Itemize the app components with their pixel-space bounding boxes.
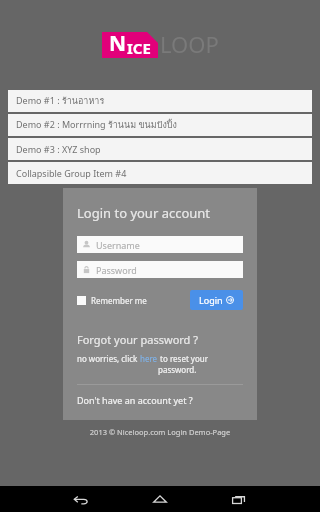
button[interactable]: Username xyxy=(77,236,243,253)
button[interactable]: Demo #2 : Morrrning ร้านนม ขนมปังปิ้ง xyxy=(8,114,312,136)
staticText: Login xyxy=(199,294,223,306)
staticText: N xyxy=(109,29,127,58)
staticText: Demo #2 : Morrrning ร้านนม ขนมปังปิ้ง xyxy=(16,118,177,132)
button[interactable]: Collapsible Group Item #4 xyxy=(8,162,312,184)
staticText: Forgot your password ? xyxy=(77,332,199,347)
staticText: Password xyxy=(96,264,137,276)
button[interactable]: Home xyxy=(143,487,177,511)
button[interactable]: Demo #1 : ร้านอาหาร xyxy=(8,90,312,112)
staticText: ICE xyxy=(127,38,151,58)
staticText: to reset your password. xyxy=(158,353,243,375)
button[interactable]: Back xyxy=(64,487,98,511)
staticText: 2013 © Niceloop.com Login Demo-Page xyxy=(0,427,320,437)
button[interactable]: Login xyxy=(190,290,243,310)
staticText: Username xyxy=(96,239,140,251)
button[interactable]: here xyxy=(140,353,158,364)
button[interactable]: Don't have an account yet ? xyxy=(77,394,193,406)
button[interactable]: Password xyxy=(77,261,243,278)
staticText: LOOP xyxy=(160,29,219,59)
button[interactable]: Demo #3 : XYZ shop xyxy=(8,138,312,160)
staticText: Collapsible Group Item #4 xyxy=(16,167,127,179)
staticText: Login to your account xyxy=(77,204,211,222)
staticText: no worries, click xyxy=(77,353,140,364)
button[interactable]: Recents xyxy=(222,487,256,511)
staticText: Remember me xyxy=(91,295,147,306)
staticText: Demo #3 : XYZ shop xyxy=(16,143,101,155)
button[interactable]: Remember me xyxy=(77,295,147,306)
staticText: Demo #1 : ร้านอาหาร xyxy=(16,94,105,108)
